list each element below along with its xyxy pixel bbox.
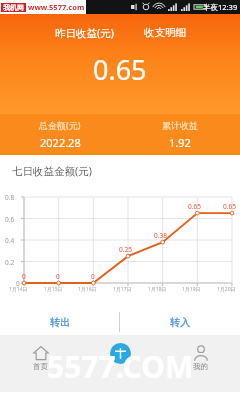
- button[interactable]: 收支明细: [143, 25, 187, 40]
- staticText: 0: [22, 272, 26, 281]
- staticText: 七日收益金额(元): [12, 164, 92, 178]
- staticText: 昨日收益(元): [55, 26, 114, 40]
- button[interactable]: 转入: [120, 309, 240, 335]
- staticText: 1月20日: [217, 286, 236, 293]
- button[interactable]: 转出: [0, 309, 119, 335]
- staticText: 0: [91, 272, 95, 281]
- staticText: 我的: [193, 362, 208, 371]
- staticText: 0.38: [154, 231, 167, 240]
- staticText: 0.8: [5, 193, 15, 202]
- staticText: 0.2: [5, 258, 15, 267]
- button[interactable]: 记一笔: [110, 343, 131, 364]
- staticText: 收支明细: [144, 26, 186, 39]
- staticText: 1月18日: [148, 286, 167, 293]
- staticText: 首页: [33, 362, 48, 371]
- staticText: 0.65: [93, 51, 147, 88]
- staticText: 0: [16, 279, 20, 288]
- staticText: 我机网: [3, 3, 24, 12]
- button[interactable]: 累计收益: [120, 114, 240, 155]
- staticText: 1月15日: [44, 286, 63, 293]
- staticText: 0.65: [188, 202, 201, 211]
- staticText: 0.6: [5, 215, 15, 224]
- staticText: 1.92: [169, 135, 191, 150]
- staticText: 1月19日: [182, 286, 201, 293]
- staticText: www.5577.com: [28, 2, 85, 12]
- button[interactable]: 总金额(元): [0, 114, 120, 155]
- staticText: 0.25: [119, 245, 132, 254]
- staticText: 5577.COM: [47, 346, 194, 387]
- staticText: 0: [56, 272, 60, 281]
- staticText: 2022.28: [40, 135, 81, 150]
- button[interactable]: Home: [0, 340, 80, 392]
- staticText: 转入: [170, 316, 190, 329]
- staticText: 转出: [50, 316, 70, 329]
- staticText: 半夜12:39: [203, 2, 238, 12]
- staticText: 0.4: [5, 236, 15, 245]
- staticText: 总金额(元): [39, 119, 81, 131]
- staticText: 累计收益: [162, 120, 198, 131]
- button[interactable]: 昨日收益(元): [54, 25, 115, 41]
- staticText: 1月17日: [113, 286, 132, 293]
- staticText: 1月16日: [78, 286, 97, 293]
- staticText: 1月14日: [9, 286, 28, 293]
- button[interactable]: Profile: [160, 340, 240, 392]
- staticText: 0.65: [223, 202, 236, 211]
